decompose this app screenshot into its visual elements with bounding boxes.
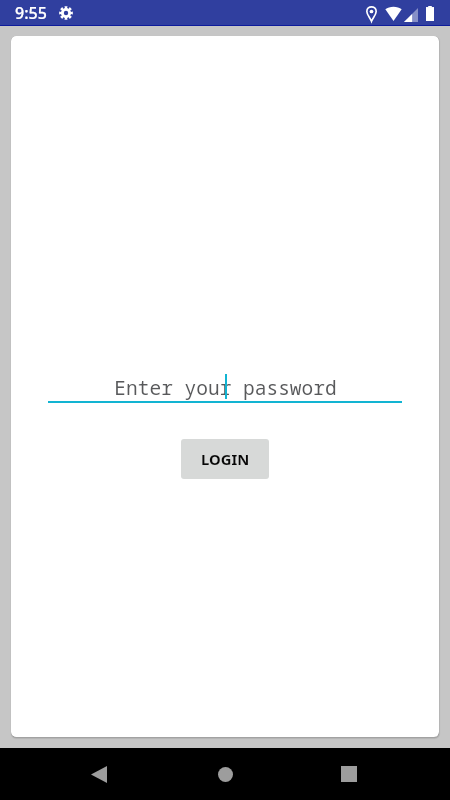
staticText: Enter your password	[114, 374, 337, 401]
button[interactable]: Recents	[325, 750, 373, 798]
button[interactable]: Enter your password	[48, 371, 402, 411]
staticText: LOGIN	[201, 449, 250, 469]
button[interactable]: Home	[201, 750, 249, 798]
staticText: 9:55	[15, 2, 47, 24]
button[interactable]: LOGIN	[181, 439, 269, 479]
button[interactable]: Back	[75, 750, 123, 798]
